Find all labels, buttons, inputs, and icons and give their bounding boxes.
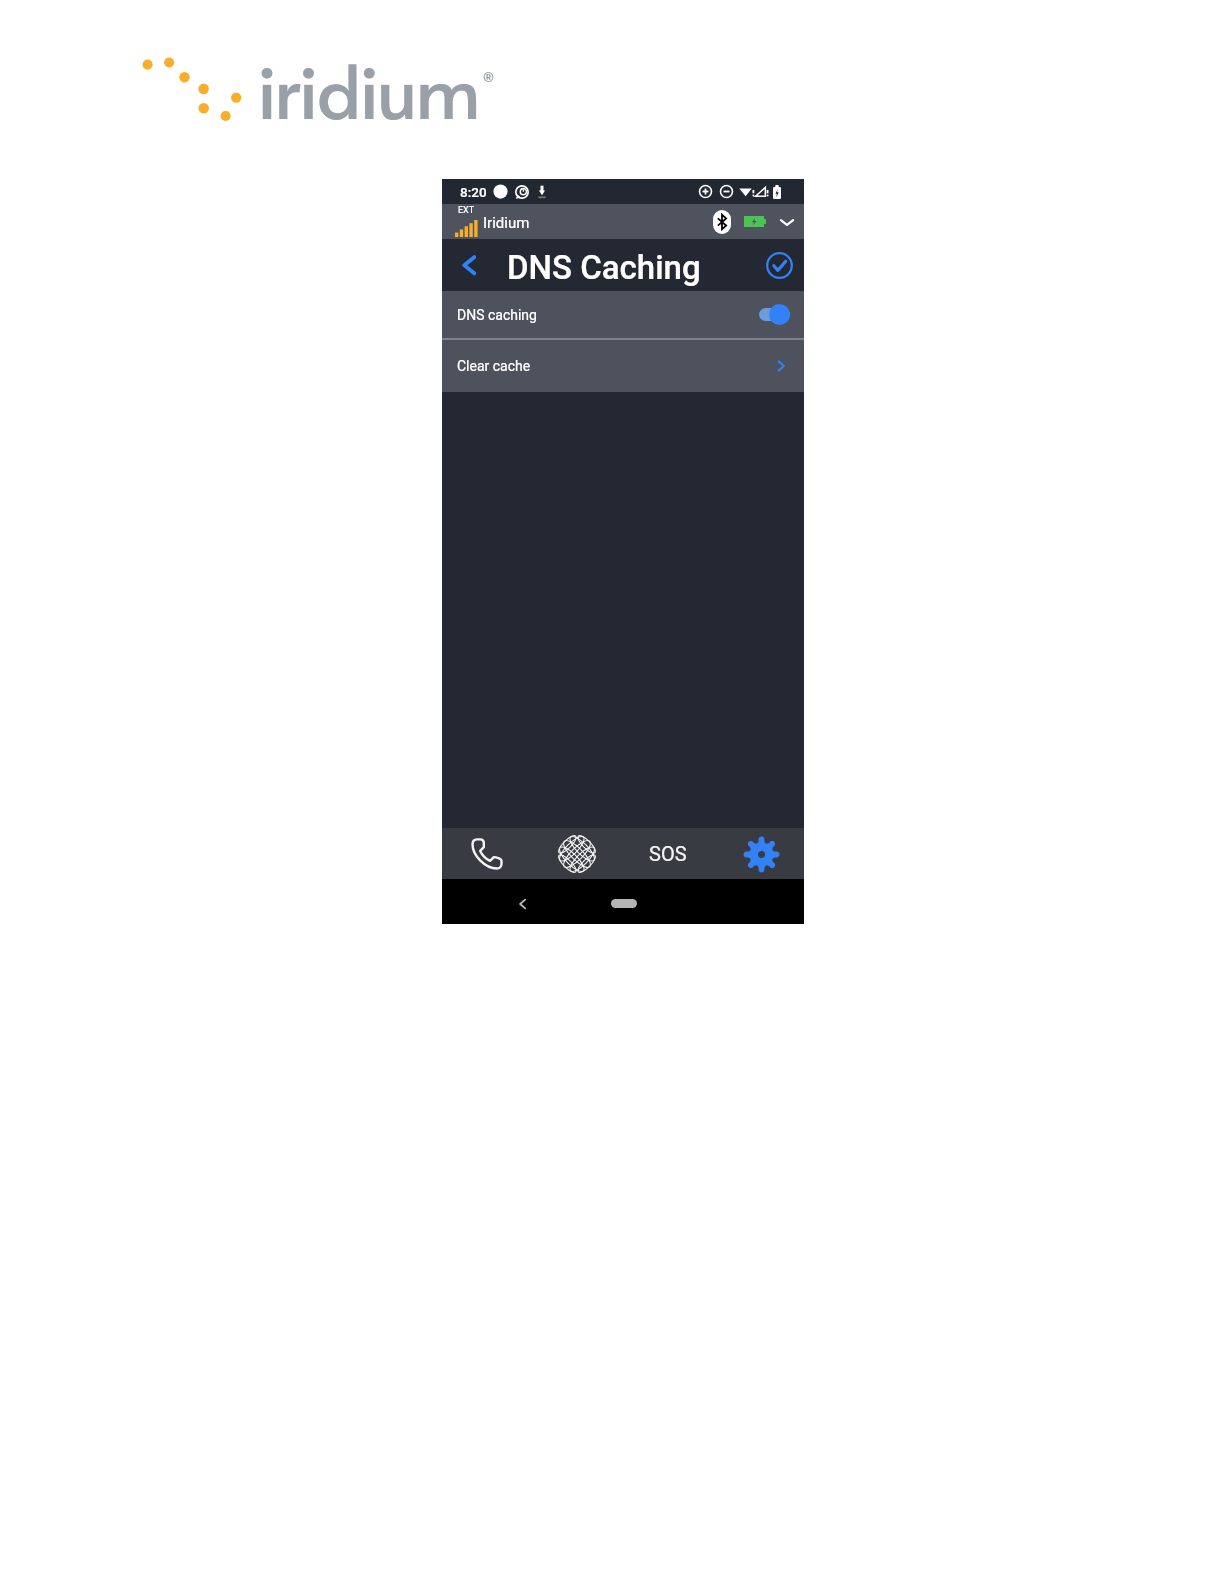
button[interactable]: SOS — [622, 828, 713, 879]
button[interactable]: Confirm — [766, 252, 793, 279]
staticText: DNS caching — [457, 307, 537, 323]
staticText: 8:20 — [460, 184, 487, 200]
staticText: EXT — [458, 205, 475, 216]
button[interactable]: Home — [611, 899, 637, 908]
staticText: SOS — [649, 842, 687, 865]
button[interactable]: DNS caching — [442, 291, 804, 338]
button[interactable]: Back — [514, 895, 532, 913]
button[interactable]: Phone — [442, 828, 532, 879]
button[interactable]: Globe — [532, 828, 622, 879]
staticText: DNS Caching — [507, 248, 701, 287]
button[interactable]: Clear cache — [442, 340, 804, 392]
button[interactable]: Settings — [713, 828, 804, 879]
staticText: iridium — [257, 38, 480, 140]
button[interactable]: Back — [456, 252, 482, 278]
staticText: Clear cache — [457, 358, 531, 374]
staticText: ® — [483, 68, 494, 86]
staticText: Iridium — [483, 214, 530, 232]
